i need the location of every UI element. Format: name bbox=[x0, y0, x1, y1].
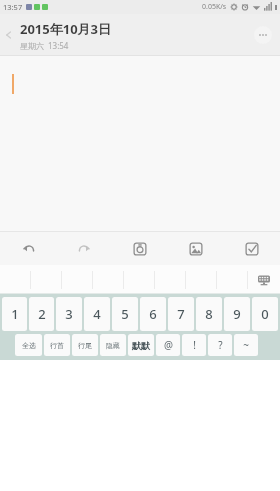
button[interactable]: Undo bbox=[0, 232, 56, 265]
staticText: 4 bbox=[93, 305, 101, 323]
staticText: ! bbox=[193, 338, 196, 352]
button[interactable]: Insert image bbox=[168, 232, 224, 265]
staticText: 隐藏 bbox=[106, 341, 120, 350]
button[interactable]: More options bbox=[254, 26, 272, 44]
staticText: 6 bbox=[149, 305, 157, 323]
button[interactable]: 默默 bbox=[128, 334, 154, 356]
button[interactable] bbox=[0, 265, 31, 294]
staticText: ? bbox=[218, 338, 223, 352]
button[interactable]: 8 bbox=[196, 297, 222, 331]
button[interactable]: 7 bbox=[168, 297, 194, 331]
button[interactable] bbox=[155, 265, 186, 294]
staticText: 2015年10月3日 bbox=[20, 20, 112, 38]
button[interactable]: ! bbox=[182, 334, 206, 356]
button[interactable]: Redo bbox=[56, 232, 112, 265]
button[interactable]: 行首 bbox=[44, 334, 70, 356]
button[interactable]: Back bbox=[0, 14, 18, 56]
staticText: 3 bbox=[65, 305, 73, 323]
button[interactable] bbox=[0, 56, 280, 231]
staticText: 5 bbox=[121, 305, 129, 323]
staticText: 星期六 bbox=[20, 41, 44, 51]
staticText: @ bbox=[164, 338, 173, 352]
button[interactable]: 全选 bbox=[15, 334, 42, 356]
button[interactable]: Switch keyboard bbox=[248, 265, 280, 294]
staticText: 13:57 bbox=[3, 2, 23, 12]
staticText: 2 bbox=[38, 305, 46, 323]
staticText: 13:54 bbox=[48, 40, 69, 51]
button[interactable]: Checklist bbox=[224, 232, 280, 265]
button[interactable] bbox=[217, 265, 248, 294]
button[interactable]: Camera bbox=[112, 232, 168, 265]
staticText: 9 bbox=[233, 305, 241, 323]
button[interactable]: 4 bbox=[84, 297, 110, 331]
staticText: 1 bbox=[11, 305, 19, 323]
staticText: 行首 bbox=[50, 341, 64, 350]
staticText: 0.05K/s bbox=[202, 2, 227, 12]
button[interactable] bbox=[93, 265, 124, 294]
staticText: 8 bbox=[205, 305, 213, 323]
button[interactable]: @ bbox=[156, 334, 180, 356]
button[interactable]: 0 bbox=[252, 297, 278, 331]
staticText: 行尾 bbox=[78, 341, 92, 350]
button[interactable]: 6 bbox=[140, 297, 166, 331]
staticText: ~ bbox=[243, 338, 249, 352]
button[interactable] bbox=[186, 265, 217, 294]
button[interactable]: 行尾 bbox=[72, 334, 98, 356]
staticText: 0 bbox=[261, 305, 269, 323]
button[interactable]: ? bbox=[208, 334, 232, 356]
button[interactable]: 1 bbox=[2, 297, 27, 331]
button[interactable] bbox=[62, 265, 93, 294]
staticText: 全选 bbox=[22, 341, 36, 350]
button[interactable]: 5 bbox=[112, 297, 138, 331]
staticText: 默默 bbox=[132, 340, 150, 351]
button[interactable]: 3 bbox=[56, 297, 82, 331]
button[interactable]: 9 bbox=[224, 297, 250, 331]
button[interactable]: 隐藏 bbox=[100, 334, 126, 356]
staticText: 7 bbox=[177, 305, 185, 323]
button[interactable] bbox=[124, 265, 155, 294]
button[interactable]: ~ bbox=[234, 334, 258, 356]
button[interactable] bbox=[31, 265, 62, 294]
button[interactable]: 2 bbox=[29, 297, 54, 331]
